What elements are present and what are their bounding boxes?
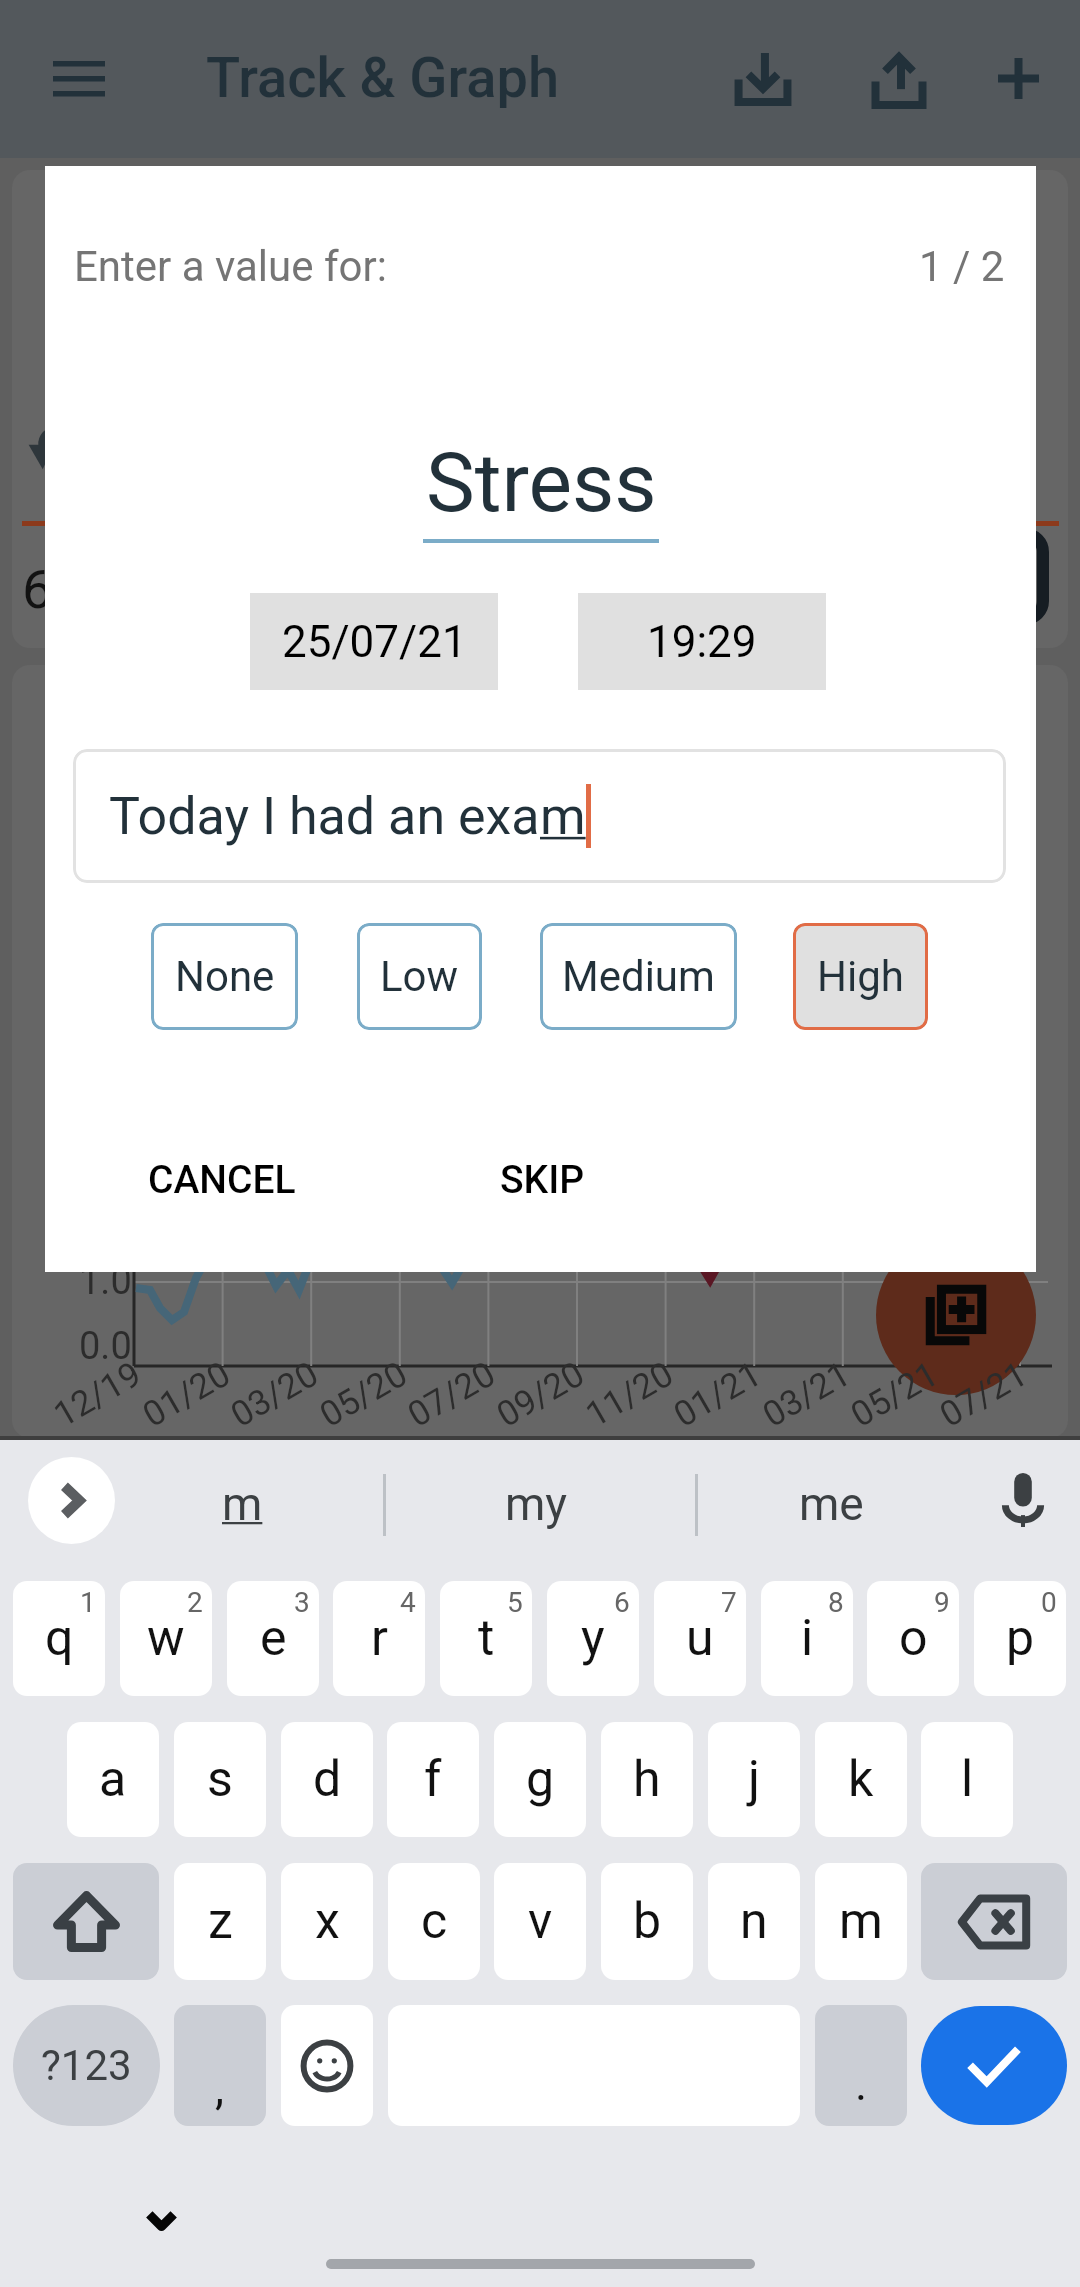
staticText: 1 bbox=[80, 1586, 96, 1619]
staticText: g bbox=[526, 1750, 555, 1809]
staticText: z bbox=[208, 1892, 233, 1951]
staticText: 1 / 2 bbox=[919, 242, 1005, 291]
button[interactable]: r bbox=[333, 1581, 425, 1696]
button[interactable]: e bbox=[227, 1581, 319, 1696]
staticText: 19:29 bbox=[647, 616, 757, 668]
staticText: f bbox=[424, 1750, 442, 1809]
button[interactable]: d bbox=[281, 1722, 373, 1837]
button[interactable]: y bbox=[547, 1581, 639, 1696]
button[interactable]: u bbox=[654, 1581, 746, 1696]
staticText: p bbox=[1006, 1609, 1035, 1668]
button[interactable]: Menu bbox=[29, 28, 129, 128]
staticText: d bbox=[313, 1750, 342, 1809]
button[interactable]: s bbox=[174, 1722, 266, 1837]
button[interactable]: Export bbox=[851, 33, 947, 129]
staticText: 07/21 bbox=[933, 1353, 1035, 1436]
button[interactable]: n bbox=[708, 1863, 800, 1980]
button[interactable]: m bbox=[815, 1863, 907, 1980]
staticText: 11/20 bbox=[579, 1353, 681, 1436]
staticText: i bbox=[801, 1609, 814, 1668]
button[interactable]: SKIP bbox=[482, 1141, 603, 1219]
staticText: 01/21 bbox=[667, 1353, 769, 1436]
staticText: 09/20 bbox=[490, 1353, 592, 1436]
staticText: Medium bbox=[562, 952, 715, 1001]
button[interactable]: Add tracker bbox=[970, 30, 1066, 126]
button[interactable]: Today I had an exa bbox=[73, 749, 1006, 883]
staticText: x bbox=[315, 1892, 340, 1951]
button[interactable]: h bbox=[601, 1722, 693, 1837]
button[interactable]: 25/07/21 bbox=[250, 593, 498, 690]
button[interactable]: 6 bbox=[12, 170, 1068, 648]
button[interactable]: w bbox=[120, 1581, 212, 1696]
staticText: m bbox=[540, 786, 586, 847]
staticText: Enter a value for: bbox=[74, 242, 387, 291]
button[interactable]: Voice input bbox=[975, 1452, 1071, 1548]
staticText: w bbox=[147, 1609, 185, 1668]
button[interactable]: v bbox=[494, 1863, 586, 1980]
button[interactable]: k bbox=[815, 1722, 907, 1837]
button[interactable]: my bbox=[386, 1444, 686, 1564]
staticText: m bbox=[222, 1477, 263, 1531]
staticText: 05/20 bbox=[313, 1353, 415, 1436]
button[interactable]: Shift bbox=[13, 1863, 159, 1980]
staticText: y bbox=[581, 1609, 605, 1668]
staticText: ?123 bbox=[41, 2041, 132, 2090]
button[interactable]: CANCEL bbox=[130, 1141, 314, 1219]
button[interactable]: c bbox=[388, 1863, 480, 1980]
staticText: n bbox=[740, 1892, 768, 1951]
button[interactable]: , bbox=[174, 2005, 266, 2126]
button[interactable]: Hide keyboard bbox=[111, 2170, 211, 2270]
staticText: High bbox=[817, 952, 904, 1001]
staticText: 3 bbox=[294, 1586, 310, 1619]
button[interactable]: Enter bbox=[921, 2006, 1067, 2125]
button[interactable]: Import bbox=[715, 30, 811, 126]
button[interactable]: . bbox=[815, 2005, 907, 2126]
button[interactable]: f bbox=[387, 1722, 479, 1837]
button[interactable]: High bbox=[793, 923, 928, 1030]
button[interactable]: ?123 bbox=[13, 2005, 160, 2126]
staticText: SKIP bbox=[500, 1157, 585, 1203]
button[interactable]: m bbox=[120, 1444, 365, 1564]
staticText: 4 bbox=[400, 1586, 416, 1619]
staticText: q bbox=[45, 1609, 74, 1668]
staticText: c bbox=[421, 1892, 448, 1951]
staticText: 25/07/21 bbox=[282, 616, 467, 668]
button[interactable]: None bbox=[151, 923, 298, 1030]
staticText: t bbox=[478, 1609, 495, 1668]
staticText: 5 bbox=[507, 1586, 523, 1619]
staticText: Low bbox=[380, 952, 459, 1001]
button[interactable]: a bbox=[67, 1722, 159, 1837]
staticText: my bbox=[505, 1477, 568, 1531]
staticText: s bbox=[207, 1750, 233, 1809]
staticText: 0.0 bbox=[79, 1324, 132, 1369]
button[interactable]: q bbox=[13, 1581, 105, 1696]
staticText: 03/21 bbox=[756, 1353, 858, 1436]
button[interactable]: z bbox=[174, 1863, 266, 1980]
staticText: 2 bbox=[187, 1586, 203, 1619]
button[interactable]: 19:29 bbox=[578, 593, 826, 690]
button[interactable]: o bbox=[867, 1581, 959, 1696]
button[interactable]: Backspace bbox=[921, 1863, 1067, 1980]
staticText: 6 bbox=[614, 1586, 630, 1619]
button[interactable]: Low bbox=[357, 923, 482, 1030]
button[interactable]: j bbox=[708, 1722, 800, 1837]
staticText: Track & Graph bbox=[206, 45, 560, 111]
button[interactable]: l bbox=[921, 1722, 1013, 1837]
staticText: 05/21 bbox=[844, 1353, 946, 1436]
button[interactable]: Medium bbox=[540, 923, 737, 1030]
button[interactable] bbox=[12, 665, 1068, 1438]
button[interactable]: i bbox=[761, 1581, 853, 1696]
button[interactable]: t bbox=[440, 1581, 532, 1696]
staticText: v bbox=[528, 1892, 553, 1951]
button[interactable]: p bbox=[974, 1581, 1066, 1696]
button[interactable]: me bbox=[698, 1444, 964, 1564]
staticText: me bbox=[799, 1477, 864, 1531]
button[interactable]: More suggestions bbox=[28, 1457, 115, 1544]
button[interactable]: Emoji bbox=[281, 2005, 373, 2126]
button[interactable]: Add tracker bbox=[876, 1235, 1036, 1395]
button[interactable]: g bbox=[494, 1722, 586, 1837]
staticText: 01/20 bbox=[136, 1353, 238, 1436]
button[interactable]: b bbox=[601, 1863, 693, 1980]
button[interactable]: x bbox=[281, 1863, 373, 1980]
